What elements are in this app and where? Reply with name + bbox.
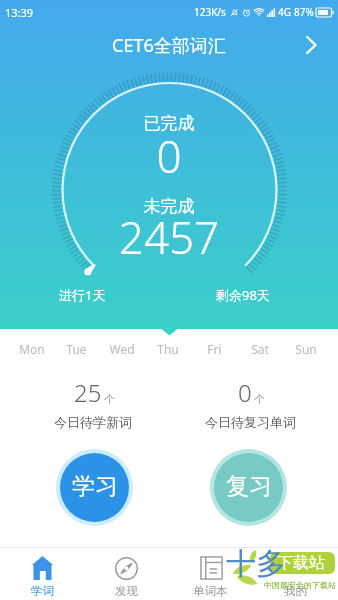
staticText: Fri <box>207 341 222 357</box>
staticText: 未完成 <box>0 196 338 217</box>
button[interactable]: 复习 <box>210 449 287 526</box>
button[interactable]: 25 <box>13 376 173 432</box>
staticText: Sat <box>251 341 269 357</box>
button[interactable]: Mon <box>9 337 54 361</box>
button[interactable]: Fri <box>191 337 237 361</box>
staticText: 下载站 <box>277 553 325 573</box>
button[interactable]: Switch word book <box>300 34 322 56</box>
staticText: 我的 <box>284 584 307 598</box>
staticText: Mon <box>19 341 45 357</box>
staticText: 87% <box>294 5 314 19</box>
button[interactable]: 我的 <box>253 547 338 600</box>
staticText: 中国最安全的下载站 <box>264 580 336 590</box>
staticText: 学词 <box>31 584 54 598</box>
staticText: 十多 <box>226 545 286 583</box>
button[interactable]: Wed <box>99 337 145 361</box>
staticText: 剩余98天 <box>216 286 270 304</box>
staticText: 0 <box>0 126 338 186</box>
staticText: 已完成 <box>0 113 338 134</box>
staticText: 123K/s <box>194 5 226 19</box>
staticText: Sun <box>295 341 317 357</box>
staticText: 个 <box>104 392 115 406</box>
staticText: 今日待复习单词 <box>205 414 296 430</box>
staticText: 0 <box>238 376 252 409</box>
staticText: 单词本 <box>193 584 228 598</box>
button[interactable]: Sun <box>283 337 329 361</box>
staticText: 学习 <box>72 472 118 501</box>
staticText: 13:39 <box>5 5 34 20</box>
button[interactable]: 0 <box>170 376 330 432</box>
button[interactable]: 单词本 <box>168 547 253 600</box>
staticText: Thu <box>157 341 179 357</box>
staticText: 发现 <box>115 584 138 598</box>
staticText: CET6全部词汇 <box>112 33 226 58</box>
button[interactable]: 学词 <box>0 547 84 600</box>
staticText: 4G <box>278 5 291 19</box>
staticText: Tue <box>66 341 87 357</box>
staticText: 今日待学新词 <box>54 414 132 430</box>
staticText: 进行1天 <box>59 286 106 304</box>
button[interactable]: Sat <box>237 337 283 361</box>
staticText: 个 <box>254 392 265 406</box>
button[interactable]: 学习 <box>56 449 133 526</box>
button[interactable]: Thu <box>145 337 191 361</box>
staticText: 2457 <box>0 207 338 267</box>
button[interactable]: 发现 <box>84 547 168 600</box>
button[interactable]: Tue <box>54 337 99 361</box>
staticText: 复习 <box>226 472 272 501</box>
staticText: 25 <box>74 376 102 409</box>
button[interactable]: CET6全部词汇 <box>0 24 338 66</box>
staticText: Wed <box>109 341 135 357</box>
